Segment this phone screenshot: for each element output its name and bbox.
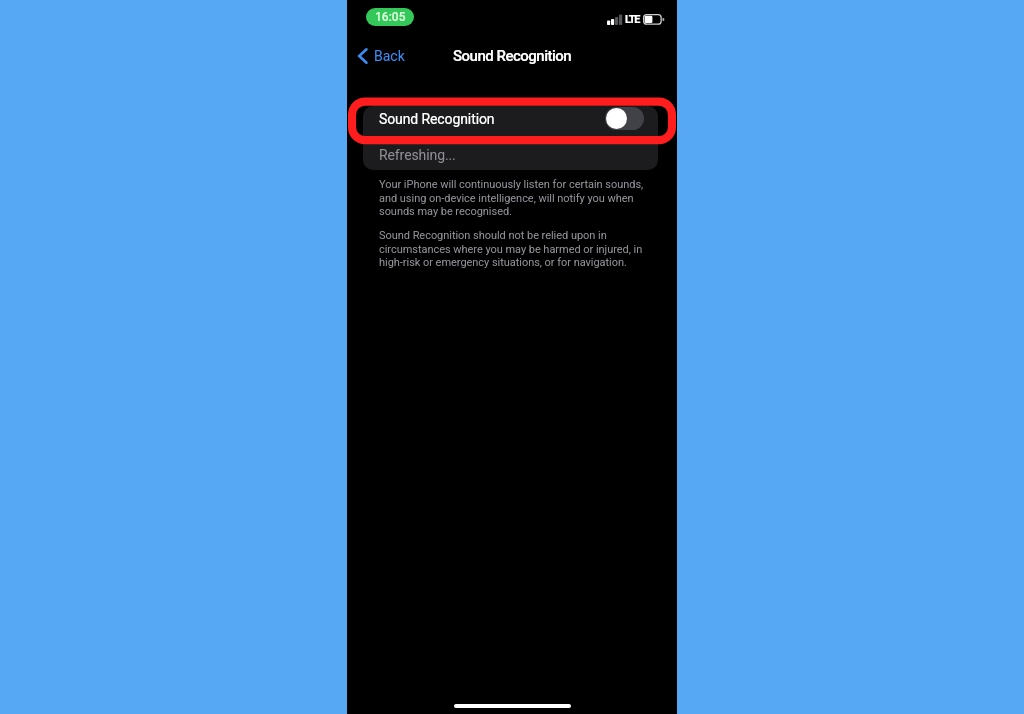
staticText: 16:05 [375, 10, 406, 24]
staticText: Sound Recognition [453, 47, 572, 65]
staticText: Your iPhone will continuously listen for… [379, 178, 651, 217]
staticText: Refreshing... [379, 147, 456, 163]
staticText: Sound Recognition should not be relied u… [379, 229, 651, 268]
button[interactable]: Sound Recognition toggle [605, 107, 644, 130]
button[interactable]: Sound Recognition [363, 106, 658, 131]
button[interactable]: Refreshing... [363, 131, 658, 170]
staticText: LTE [625, 13, 640, 26]
staticText: Back [374, 48, 405, 64]
button[interactable]: Back [355, 44, 408, 68]
staticText: Sound Recognition [379, 111, 495, 127]
